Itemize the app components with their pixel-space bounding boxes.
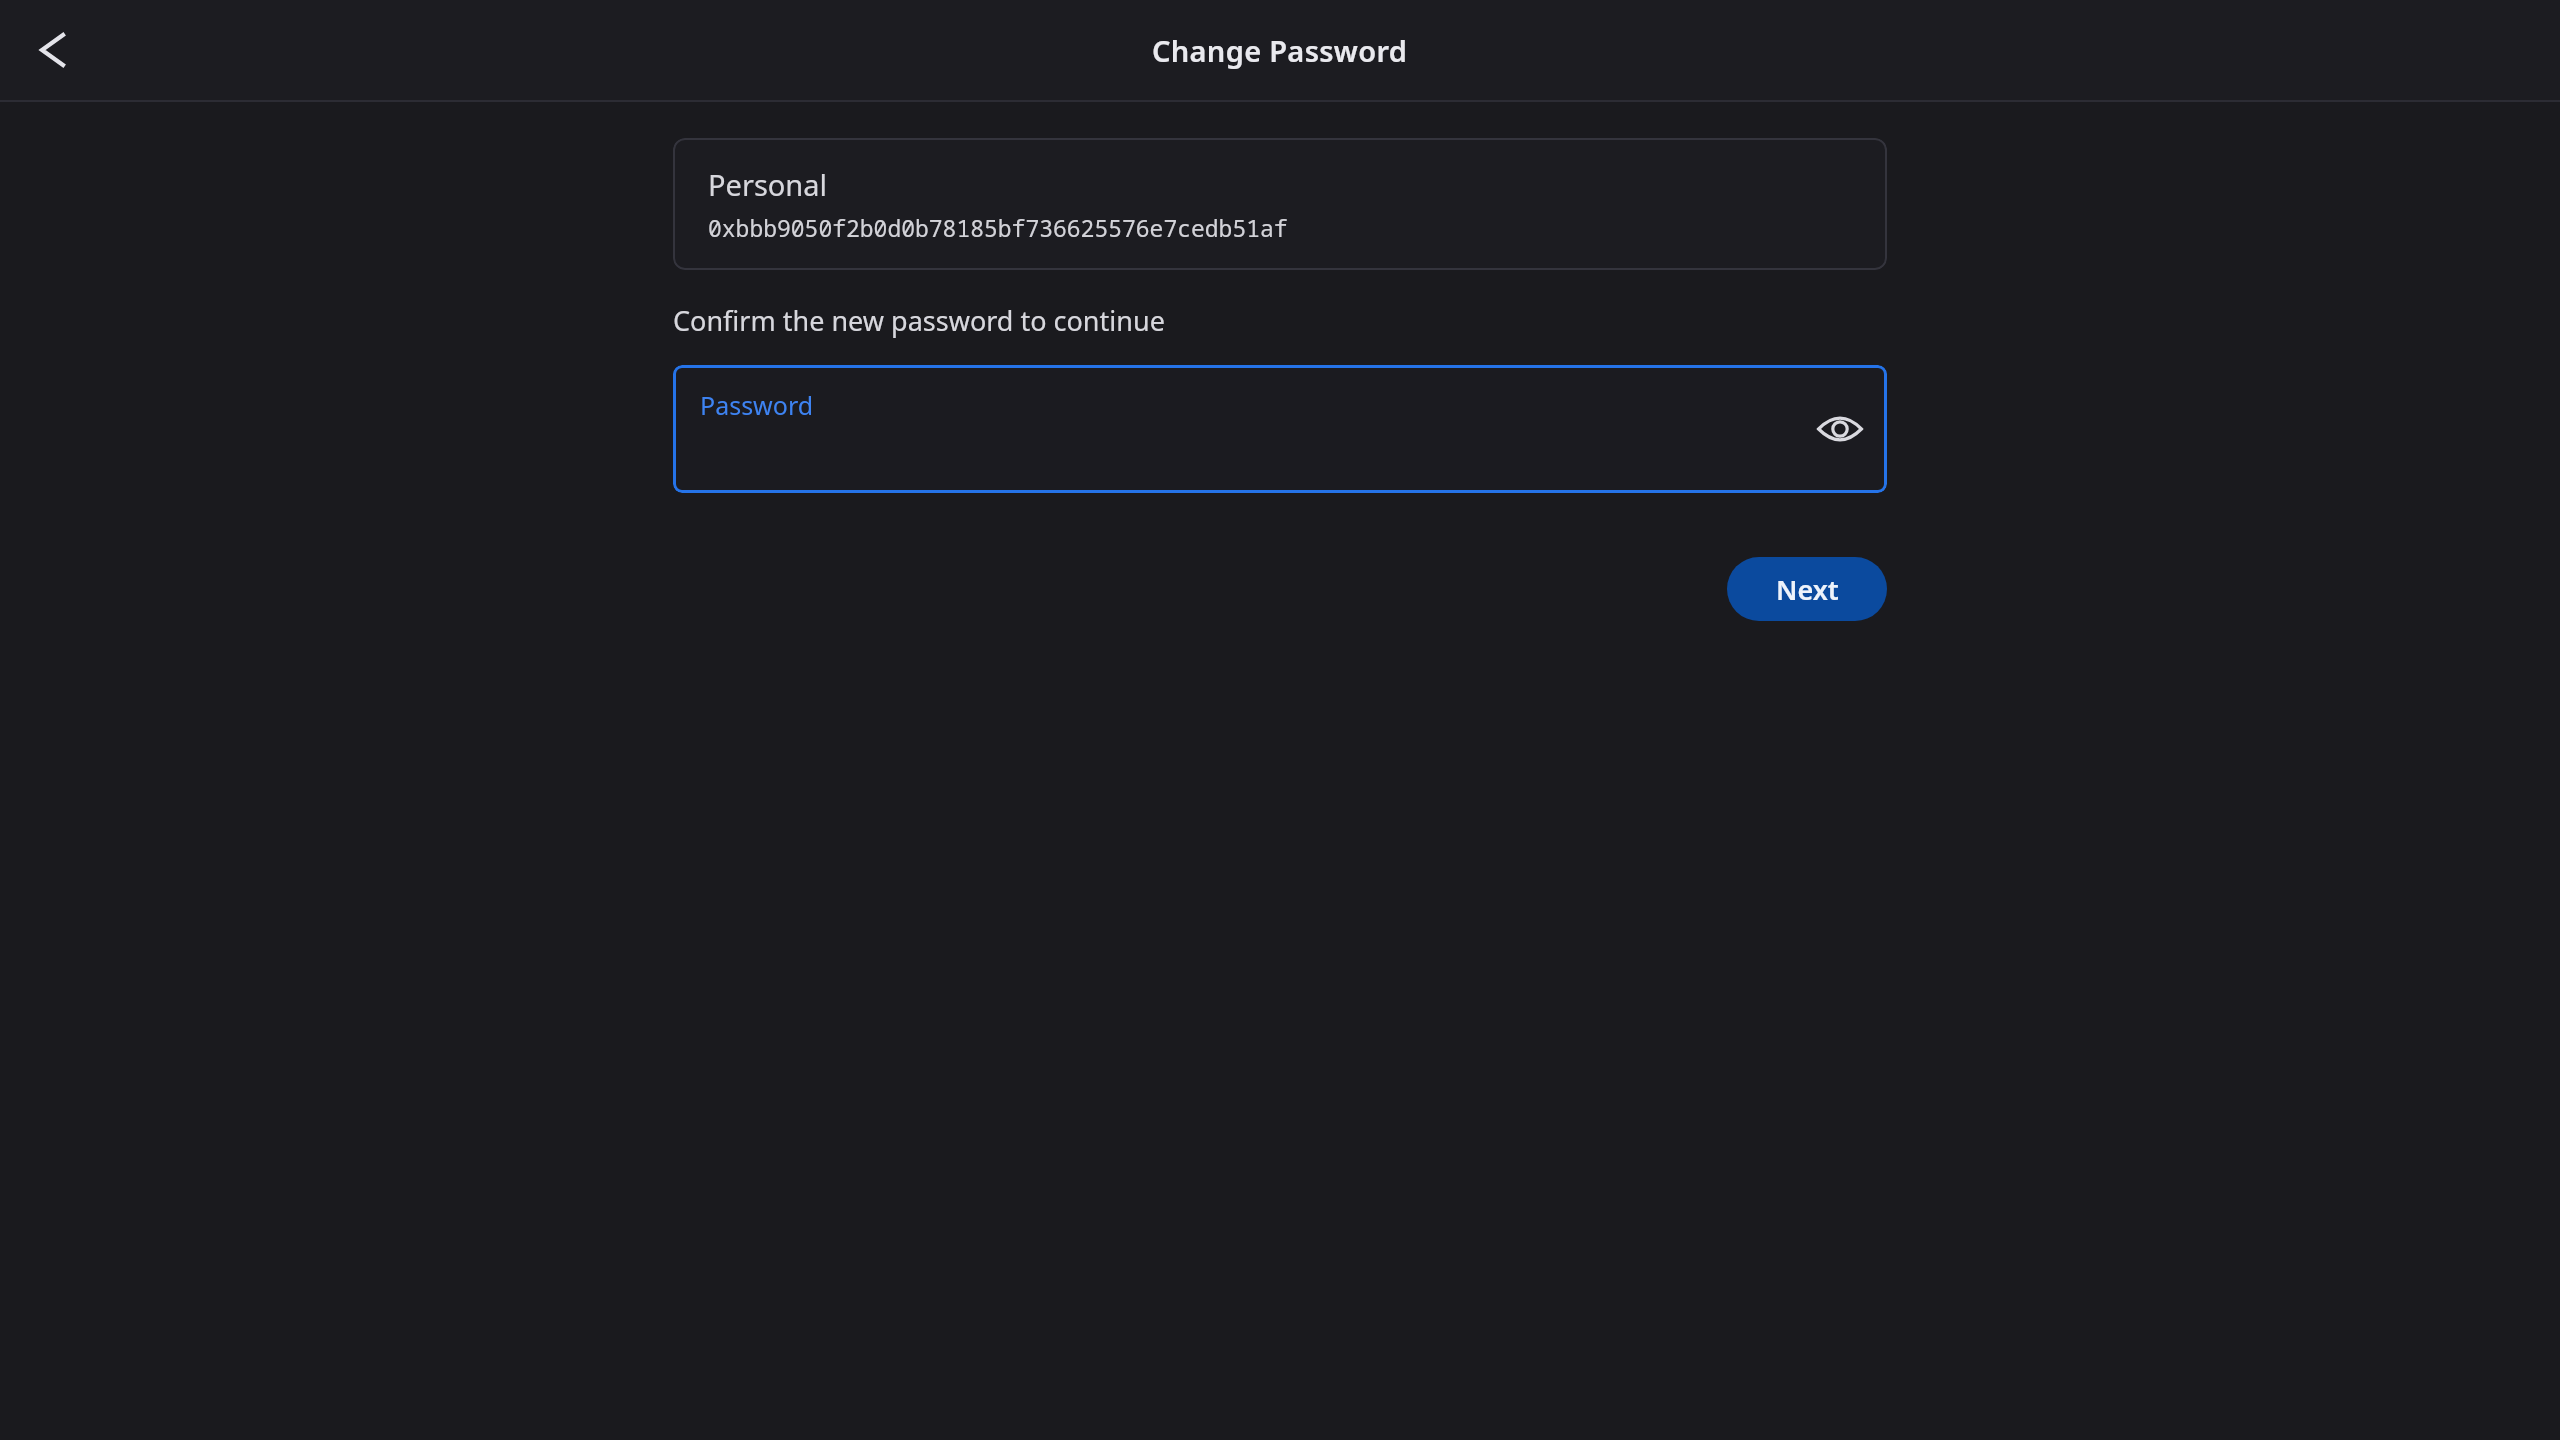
staticText: Next — [1776, 571, 1839, 608]
button[interactable]: Next — [1727, 557, 1887, 621]
staticText: Confirm the new password to continue — [673, 302, 1165, 339]
staticText: 0xbbb9050f2b0d0b78185bf736625576e7cedb51… — [708, 212, 1288, 243]
staticText: Change Password — [1152, 31, 1408, 70]
button[interactable]: Personal — [673, 138, 1887, 270]
staticText: Password — [700, 388, 814, 422]
button[interactable]: Password — [673, 365, 1887, 493]
button[interactable]: Show password — [1811, 400, 1869, 458]
staticText: Personal — [708, 165, 827, 204]
button[interactable]: Back — [20, 18, 84, 82]
